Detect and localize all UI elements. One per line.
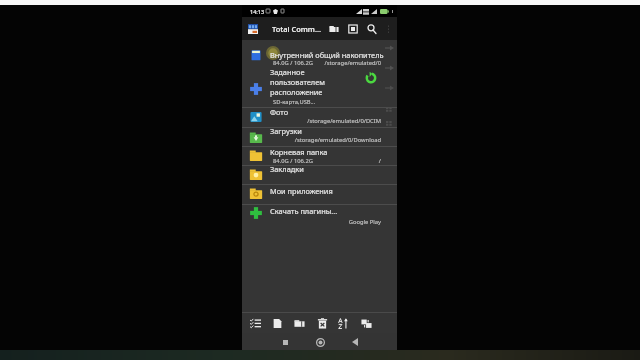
staticText: Total Comm... <box>272 24 322 34</box>
staticText: Заданное <box>270 67 305 77</box>
button[interactable]: Back <box>344 333 366 351</box>
button[interactable]: Sort <box>332 313 354 333</box>
staticText: SD-карта,USB... <box>273 98 316 106</box>
staticText: Фото <box>270 107 289 117</box>
button[interactable]: Total Commander <box>246 22 260 36</box>
staticText: / <box>242 157 381 165</box>
button[interactable]: Select all <box>244 313 266 333</box>
button[interactable]: Recent apps <box>274 333 296 351</box>
button[interactable]: Screen layout <box>345 17 361 40</box>
staticText: /storage/emulated/0/Download <box>242 136 381 144</box>
button[interactable] <box>242 205 397 227</box>
staticText: расположение <box>270 87 323 97</box>
staticText: 84.0G / 106.2G <box>273 157 313 165</box>
button[interactable] <box>242 128 397 147</box>
staticText: /storage/emulated/0/DCIM <box>242 117 381 125</box>
staticText: Google Play <box>242 218 381 226</box>
button[interactable] <box>242 108 397 127</box>
staticText: Загрузки <box>270 126 302 136</box>
staticText: /storage/emulated/0 <box>242 59 381 67</box>
staticText: Закладки <box>270 164 304 174</box>
button[interactable]: Delete <box>311 313 333 333</box>
staticText: 84.0G / 106.2G <box>273 59 313 67</box>
button[interactable] <box>242 41 397 69</box>
staticText: 14:13 <box>250 8 265 15</box>
button[interactable]: Search <box>364 17 380 40</box>
staticText: Корневая папка <box>270 147 328 157</box>
button[interactable]: New folder <box>288 313 310 333</box>
button[interactable]: Panels <box>355 313 377 333</box>
staticText: Мои приложения <box>270 186 333 196</box>
button[interactable] <box>242 69 397 107</box>
button[interactable]: Folders <box>326 17 342 40</box>
staticText: Внутренний общий накопитель <box>270 50 384 60</box>
button[interactable] <box>242 166 397 185</box>
button[interactable] <box>242 147 397 166</box>
button[interactable]: More options <box>382 17 395 40</box>
button[interactable]: New file <box>266 313 288 333</box>
button[interactable]: Home <box>309 333 331 351</box>
button[interactable]: Refresh <box>364 71 378 85</box>
staticText: Скачать плагины... <box>270 206 338 216</box>
button[interactable] <box>242 185 397 205</box>
staticText: пользователем <box>270 77 325 87</box>
